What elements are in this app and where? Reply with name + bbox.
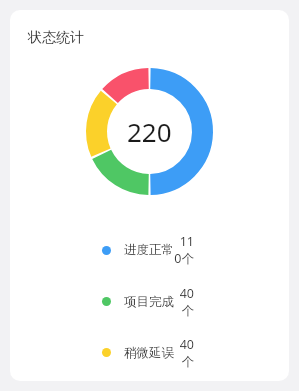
other: 稍微延误 color [102,348,111,357]
staticText: 稍微延误 [124,345,174,361]
staticText: 40个 [174,285,194,318]
button[interactable]: 项目完成 color [102,285,194,318]
staticText: 110个 [174,233,194,267]
staticText: 40个 [174,336,194,369]
other: 进度正常 color [102,246,111,255]
button[interactable]: 稍微延误 color [102,336,194,369]
button[interactable]: 进度正常 color [102,233,194,267]
staticText: 项目完成 [124,294,174,310]
staticText: 状态统计 [28,29,84,47]
staticText: 进度正常 [124,242,174,258]
other: 项目完成 color [102,297,111,306]
staticText: 220 [127,114,172,149]
